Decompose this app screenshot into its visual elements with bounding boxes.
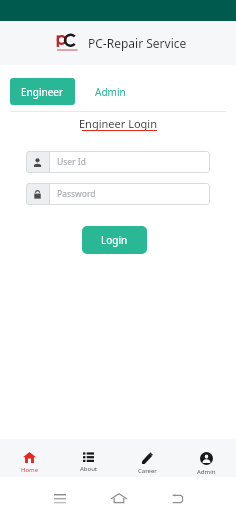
staticText: Career	[138, 467, 157, 475]
staticText: User Id	[57, 156, 86, 168]
button[interactable]: Recent apps	[30, 477, 89, 503]
staticText: Admin	[95, 85, 126, 99]
staticText: PC-Repair Service	[88, 35, 187, 51]
staticText: Login	[101, 233, 128, 247]
button[interactable]: Engineer	[10, 78, 75, 105]
button[interactable]: Career	[118, 439, 177, 477]
button[interactable]: Back	[148, 477, 207, 503]
staticText: Engineer Login	[79, 116, 157, 131]
button[interactable]: Engineer Login	[0, 116, 236, 134]
button[interactable]: Admin	[86, 78, 134, 105]
staticText: Home	[21, 466, 39, 474]
button[interactable]: Home	[89, 477, 148, 503]
button[interactable]: Admin	[177, 439, 236, 477]
button[interactable]: Home	[0, 439, 59, 477]
staticText: Password	[57, 188, 96, 200]
button[interactable]: About	[59, 439, 118, 477]
button[interactable]: User Id	[26, 151, 210, 173]
staticText: Admin	[197, 468, 216, 476]
staticText: About	[80, 465, 98, 473]
button[interactable]: Password	[26, 183, 210, 205]
button[interactable]: Login	[82, 226, 147, 254]
staticText: Engineer	[21, 85, 64, 99]
